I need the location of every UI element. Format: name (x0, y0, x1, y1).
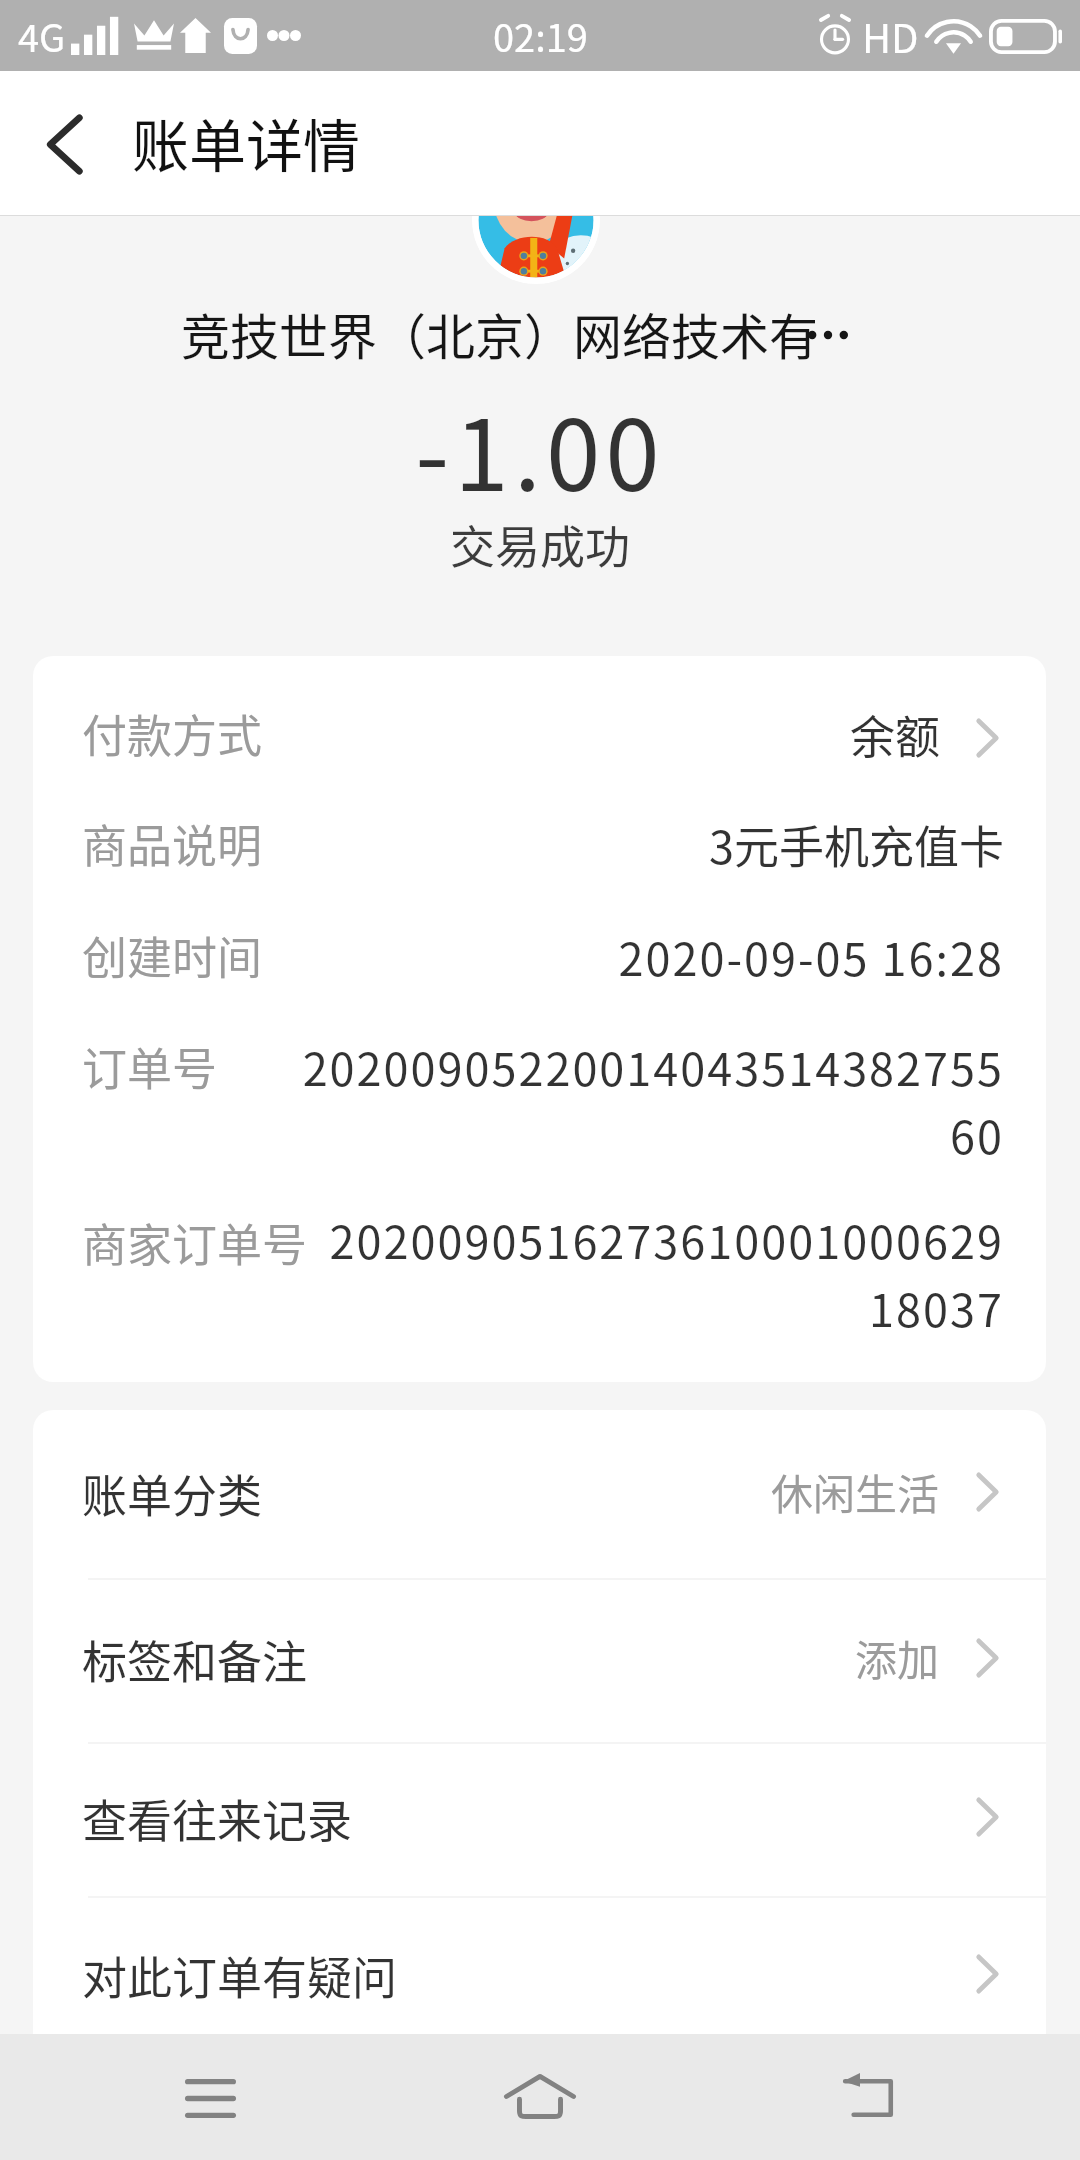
staticText: 2020090516273610001000629 18037 (213, 1207, 1004, 1340)
staticText: 商家订单号 (82, 1210, 308, 1275)
staticText: 创建时间 (82, 923, 263, 988)
staticText: 订单号 (82, 1034, 218, 1099)
staticText: 2020-09-05 16:28 (213, 924, 1004, 989)
button[interactable]: 标签和备注 (33, 1578, 1046, 1742)
button[interactable]: Back (793, 2034, 943, 2160)
staticText: HD (862, 7, 919, 65)
button[interactable]: Home (465, 2034, 615, 2160)
button[interactable]: 对此订单有疑问 (33, 1896, 1046, 2056)
staticText: 对此订单有疑问 (82, 1943, 398, 2008)
staticText: 竞技世界（北京）网络技术有 (181, 298, 819, 369)
staticText: 02:19 (493, 8, 588, 63)
staticText: 交易成功 (0, 512, 1080, 577)
staticText: -1.00 (240, 377, 840, 519)
staticText: 休闲生活 (533, 1461, 939, 1522)
staticText: 账单分类 (82, 1461, 263, 1526)
staticText: 付款方式 (82, 701, 263, 766)
staticText: 余额 (213, 702, 940, 767)
button[interactable]: 账单分类 (33, 1410, 1046, 1578)
button[interactable]: Recent apps (135, 2034, 285, 2160)
button[interactable]: 查看往来记录 (33, 1742, 1046, 1896)
button[interactable]: Back (10, 84, 120, 204)
staticText: 商品说明 (82, 811, 263, 876)
staticText: 添加 (533, 1627, 939, 1688)
staticText: 4G (18, 8, 66, 63)
staticText: 3元手机充值卡 (213, 812, 1004, 877)
staticText: 账单详情 (132, 101, 360, 184)
staticText: 标签和备注 (82, 1627, 308, 1692)
staticText: 查看往来记录 (82, 1786, 353, 1851)
staticText: 20200905220014043514382755 60 (213, 1034, 1004, 1167)
